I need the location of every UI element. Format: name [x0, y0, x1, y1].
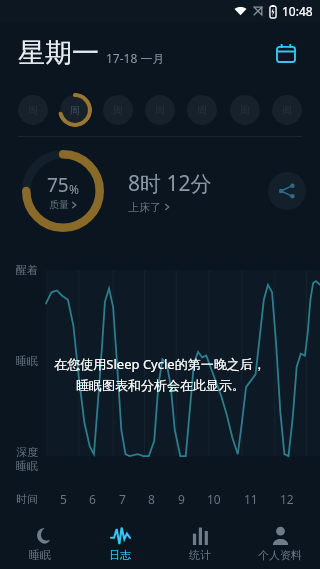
staticText: 周: [28, 104, 38, 117]
staticText: 星期一: [18, 36, 99, 70]
staticText: 睡眠: [16, 354, 38, 368]
staticText: 睡眠: [29, 548, 51, 562]
staticText: 7: [119, 491, 126, 507]
staticText: 10: [207, 491, 221, 507]
button[interactable]: 周: [228, 93, 262, 127]
staticText: 时间: [16, 492, 38, 506]
staticText: 醒着: [16, 263, 38, 277]
button[interactable]: 75: [20, 148, 106, 234]
staticText: 质量: [49, 198, 69, 211]
staticText: 周: [155, 104, 165, 117]
staticText: 9: [178, 491, 185, 507]
staticText: 5: [60, 491, 67, 507]
staticText: 上床了: [128, 200, 161, 214]
button[interactable]: 日志: [80, 519, 160, 569]
staticText: 日志: [109, 548, 131, 562]
staticText: 6: [89, 491, 96, 507]
button[interactable]: 统计: [160, 519, 240, 569]
button[interactable]: 8时 12分: [128, 169, 212, 214]
staticText: 8时 12分: [128, 169, 212, 198]
button[interactable]: Share: [268, 172, 306, 210]
button[interactable]: 周: [101, 93, 135, 127]
staticText: 睡眠: [16, 459, 38, 473]
button[interactable]: 周: [143, 93, 177, 127]
staticText: 周: [197, 104, 207, 117]
staticText: 统计: [189, 548, 211, 562]
staticText: 睡眠图表和分析会在此显示。: [76, 377, 245, 393]
button[interactable]: 睡眠: [0, 519, 80, 569]
staticText: 75: [47, 172, 69, 198]
button[interactable]: 周: [185, 93, 219, 127]
staticText: 10:48: [282, 3, 313, 19]
staticText: 8: [148, 491, 155, 507]
staticText: 周: [113, 104, 123, 117]
staticText: 周: [282, 104, 292, 117]
button[interactable]: 周: [270, 93, 304, 127]
button[interactable]: Calendar: [266, 33, 306, 73]
staticText: 12: [280, 491, 294, 507]
staticText: 周: [70, 104, 80, 117]
staticText: %: [69, 181, 79, 197]
staticText: 深度: [16, 445, 38, 459]
staticText: 周: [240, 104, 250, 117]
staticText: 在您使用Sleep Cycle的第一晚之后，: [54, 355, 266, 373]
staticText: 个人资料: [258, 548, 302, 562]
button[interactable]: 周: [58, 93, 92, 127]
staticText: 17-18 一月: [106, 50, 165, 66]
button[interactable]: 周: [16, 93, 50, 127]
staticText: 11: [244, 491, 258, 507]
button[interactable]: 个人资料: [240, 519, 320, 569]
